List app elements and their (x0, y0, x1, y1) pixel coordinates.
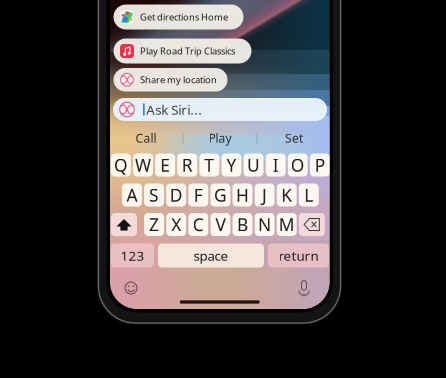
button[interactable]: B (233, 213, 252, 236)
staticText: Play Road Trip Classics (140, 45, 235, 57)
button[interactable]: O (288, 153, 308, 176)
button[interactable]: C (188, 213, 208, 236)
button[interactable]: X (166, 213, 186, 236)
button[interactable]: N (255, 213, 275, 236)
staticText: E (160, 153, 170, 176)
staticText: A (126, 183, 137, 206)
staticText: Play (208, 130, 231, 146)
button[interactable]: Play Road Trip Classics (113, 38, 251, 63)
staticText: N (258, 213, 271, 236)
button[interactable]: S (144, 183, 164, 206)
staticText: return (278, 247, 318, 264)
staticText: Get directions Home (140, 11, 228, 23)
staticText: Q (114, 153, 128, 176)
staticText: Set (285, 130, 303, 146)
button[interactable]: space (158, 243, 264, 267)
button[interactable]: A (122, 183, 142, 206)
staticText: C (193, 213, 204, 236)
staticText: J (262, 183, 267, 206)
staticText: T (204, 153, 214, 176)
staticText: F (194, 183, 203, 206)
staticText: G (214, 183, 227, 206)
staticText: Z (149, 213, 159, 236)
staticText: Y (226, 153, 236, 176)
button[interactable]: Z (144, 213, 164, 236)
staticText: D (170, 183, 183, 206)
staticText: Share my location (140, 74, 217, 86)
button[interactable]: V (210, 213, 230, 236)
staticText: X (171, 213, 181, 236)
staticText: K (281, 183, 292, 206)
staticText: L (304, 183, 313, 206)
button[interactable]: U (244, 153, 263, 176)
staticText: P (315, 153, 325, 176)
staticText: I (273, 153, 279, 176)
button[interactable]: H (233, 183, 252, 206)
staticText: B (237, 213, 248, 236)
button[interactable]: Dictate (293, 277, 315, 299)
staticText: 123 (120, 247, 144, 264)
button[interactable]: W (133, 153, 153, 176)
button[interactable]: T (199, 153, 219, 176)
staticText: H (236, 183, 249, 206)
button[interactable]: return (268, 243, 329, 267)
button[interactable]: P (310, 153, 330, 176)
button[interactable]: Y (221, 153, 241, 176)
button[interactable]: Play (183, 129, 257, 147)
staticText: W (135, 153, 151, 176)
staticText: Call (135, 130, 156, 146)
button[interactable]: Emoji keyboard (120, 277, 142, 299)
button[interactable]: G (210, 183, 230, 206)
button[interactable]: I (266, 153, 286, 176)
button[interactable]: E (155, 153, 175, 176)
staticText: S (149, 183, 159, 206)
button[interactable]: K (277, 183, 297, 206)
button[interactable]: D (166, 183, 186, 206)
button[interactable]: L (299, 183, 319, 206)
button[interactable]: Q (111, 153, 131, 176)
button[interactable]: 123 (111, 243, 154, 267)
button[interactable]: Call (109, 129, 183, 147)
staticText: V (215, 213, 225, 236)
staticText: M (279, 213, 295, 236)
button[interactable]: F (188, 183, 208, 206)
button[interactable]: Delete (299, 213, 325, 236)
button[interactable]: Shift (111, 213, 137, 236)
button[interactable]: Share my location (113, 68, 227, 91)
button[interactable]: R (177, 153, 197, 176)
button[interactable]: Set (257, 129, 331, 147)
button[interactable]: Get directions Home (113, 4, 243, 29)
staticText: O (291, 153, 305, 176)
button[interactable]: Ask Siri... (113, 98, 327, 121)
staticText: space (193, 247, 228, 264)
button[interactable]: M (277, 213, 297, 236)
staticText: U (247, 153, 260, 176)
staticText: Ask Siri... (146, 101, 202, 118)
button[interactable]: J (255, 183, 275, 206)
staticText: R (182, 153, 193, 176)
